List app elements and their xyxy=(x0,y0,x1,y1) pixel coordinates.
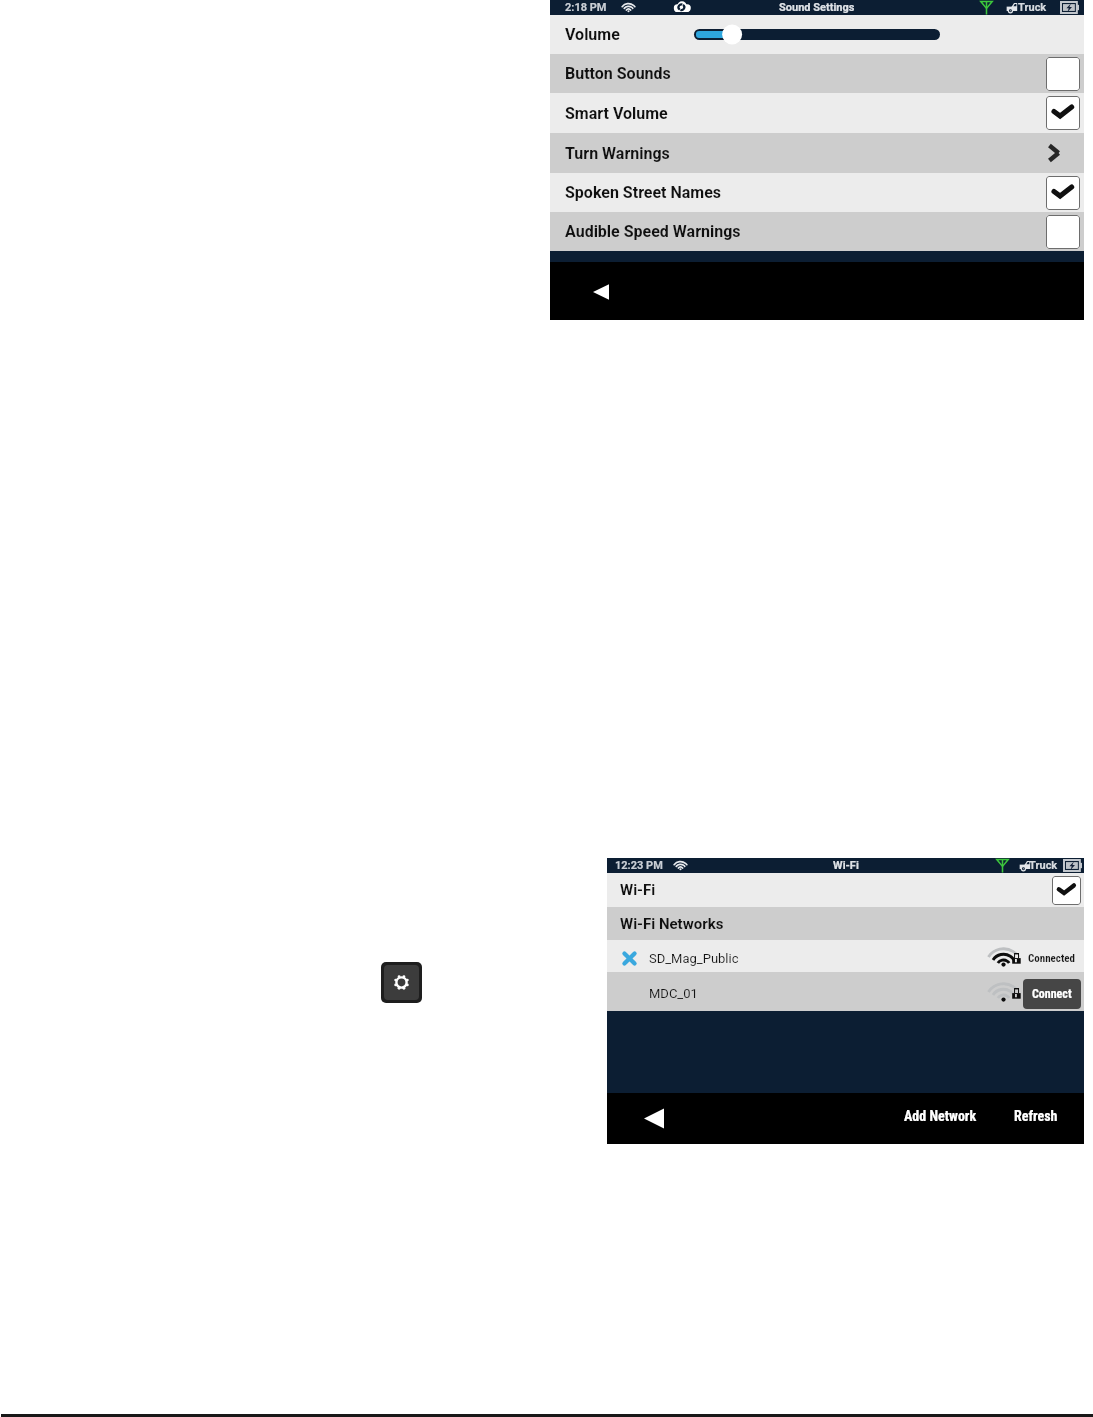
staticText: 12:23 PM xyxy=(615,859,663,872)
staticText: 2:18 PM xyxy=(565,1,607,14)
staticText: Add Network xyxy=(904,1108,977,1124)
button[interactable]: MDC_01 xyxy=(607,972,1084,1011)
staticText: Connected xyxy=(1028,952,1075,965)
staticText: Button Sounds xyxy=(565,64,671,83)
staticText: Sound Settings xyxy=(779,1,855,14)
button[interactable]: Wi-Fi xyxy=(607,873,1084,907)
staticText: Turn Warnings xyxy=(565,144,670,163)
button[interactable]: Connect xyxy=(1023,979,1081,1009)
staticText: Volume xyxy=(565,25,620,44)
button[interactable]: Back xyxy=(644,1108,664,1129)
button[interactable]: Audible Speed Warnings xyxy=(550,212,1084,251)
button[interactable]: Add Network xyxy=(897,1102,984,1130)
button[interactable]: Volume xyxy=(550,15,1084,54)
staticText: Refresh xyxy=(1014,1108,1058,1124)
button[interactable]: Back xyxy=(593,284,609,300)
button[interactable]: Spoken Street Names xyxy=(550,173,1084,212)
staticText: Wi-Fi Networks xyxy=(620,915,724,933)
staticText: Spoken Street Names xyxy=(565,183,722,202)
staticText: Audible Speed Warnings xyxy=(565,222,741,241)
button[interactable]: Refresh xyxy=(1007,1102,1065,1130)
button[interactable]: Turn Warnings xyxy=(550,133,1084,173)
staticText: Truck xyxy=(1029,859,1058,872)
staticText: Smart Volume xyxy=(565,104,668,123)
button[interactable]: Smart Volume xyxy=(550,93,1084,133)
button[interactable]: Settings xyxy=(384,965,419,1000)
staticText: SD_Mag_Public xyxy=(649,951,739,966)
button[interactable]: SD_Mag_Public xyxy=(607,940,1084,972)
button[interactable]: Button Sounds xyxy=(550,54,1084,93)
staticText: Wi-Fi xyxy=(620,881,656,899)
staticText: Wi-Fi xyxy=(833,859,859,872)
staticText: Connect xyxy=(1032,987,1072,1001)
staticText: MDC_01 xyxy=(649,986,698,1001)
staticText: Truck xyxy=(1018,1,1047,14)
